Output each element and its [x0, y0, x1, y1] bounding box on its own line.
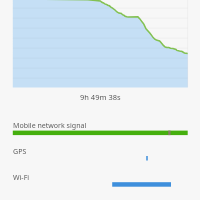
staticText: Wi-Fi	[13, 172, 30, 182]
staticText: GPS	[13, 146, 27, 156]
button[interactable]: Mobile network signal	[0, 118, 200, 142]
button[interactable]: Wi-Fi	[0, 170, 200, 194]
staticText: 9h 49m 38s	[80, 92, 121, 102]
button[interactable]: GPS	[0, 144, 200, 168]
staticText: Mobile network signal	[13, 120, 87, 130]
